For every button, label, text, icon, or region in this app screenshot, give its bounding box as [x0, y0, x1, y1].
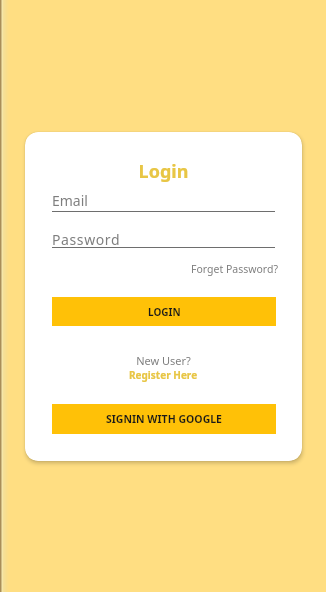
- staticText: Login: [25, 159, 302, 184]
- staticText: LOGIN: [148, 305, 181, 319]
- button[interactable]: Forget Password?: [55, 260, 278, 277]
- staticText: Forget Password?: [191, 262, 278, 276]
- staticText: Password: [52, 230, 121, 249]
- button[interactable]: SIGNIN WITH GOOGLE: [52, 404, 276, 434]
- button[interactable]: Password: [52, 225, 275, 249]
- staticText: New User?: [25, 353, 302, 368]
- staticText: Register Here: [129, 368, 198, 382]
- staticText: SIGNIN WITH GOOGLE: [106, 412, 222, 426]
- button[interactable]: Register Here: [25, 366, 302, 381]
- button[interactable]: Email: [52, 186, 275, 213]
- staticText: Email: [52, 191, 88, 210]
- button[interactable]: LOGIN: [52, 297, 276, 326]
